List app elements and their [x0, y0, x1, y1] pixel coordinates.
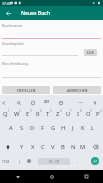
button[interactable]: Collapse toolbar — [0, 97, 9, 108]
button[interactable]: N — [68, 142, 78, 152]
button[interactable]: ABBRECHEN — [53, 86, 101, 94]
button[interactable]: Shift — [0, 142, 16, 152]
staticText: 5 — [50, 109, 52, 113]
button[interactable]: O — [83, 109, 93, 119]
staticText: H — [61, 124, 66, 132]
button[interactable]: R — [33, 109, 43, 119]
button[interactable]: S — [16, 123, 27, 133]
button[interactable]: Home — [35, 170, 69, 183]
staticText: 2 — [19, 109, 21, 113]
button[interactable]: A — [5, 123, 16, 133]
staticText: 7 — [70, 109, 72, 113]
staticText: 8 — [80, 109, 82, 113]
button[interactable]: Emoji — [24, 156, 33, 166]
button[interactable]: Enter — [91, 157, 99, 165]
button[interactable]: . — [73, 156, 82, 166]
staticText: Z — [56, 110, 60, 118]
button[interactable]: J — [68, 123, 78, 133]
staticText: D — [30, 124, 35, 132]
staticText: EUR — [87, 50, 94, 55]
staticText: ?123 — [2, 159, 10, 164]
staticText: M — [80, 143, 86, 151]
staticText: 9 — [90, 109, 92, 113]
button[interactable]: G — [48, 123, 58, 133]
staticText: B — [61, 143, 65, 151]
staticText: C — [41, 143, 45, 151]
button[interactable]: K — [78, 123, 88, 133]
staticText: N — [71, 143, 76, 151]
button[interactable]: X — [27, 142, 38, 152]
button[interactable]: I — [73, 109, 83, 119]
button[interactable]: EUR — [84, 49, 97, 56]
staticText: 3 — [30, 109, 32, 113]
staticText: S — [20, 124, 24, 132]
button[interactable]: L — [88, 123, 98, 133]
staticText: 0 — [100, 109, 102, 113]
staticText: T — [46, 110, 50, 118]
button[interactable]: Back — [0, 170, 35, 183]
staticText: . — [77, 158, 79, 165]
button[interactable]: Stickers — [55, 97, 66, 108]
button[interactable]: ERSTELLEN — [2, 86, 50, 94]
staticText: Neues Buch — [21, 10, 51, 17]
staticText: ABBRECHEN — [67, 88, 88, 93]
button[interactable]: Voice input — [89, 97, 100, 108]
staticText: X — [31, 143, 35, 151]
button[interactable]: C — [38, 142, 48, 152]
button[interactable]: W — [11, 109, 22, 119]
staticText: I — [77, 110, 79, 118]
button[interactable]: Z — [53, 109, 63, 119]
staticText: 6 — [60, 109, 62, 113]
staticText: F — [41, 124, 45, 132]
button[interactable]: Y — [16, 142, 27, 152]
staticText: 37:30 — [2, 1, 11, 6]
button[interactable]: U — [63, 109, 73, 119]
staticText: L — [91, 124, 95, 132]
button[interactable]: Backspace — [88, 142, 103, 152]
button[interactable]: T — [43, 109, 53, 119]
staticText: K — [81, 124, 85, 132]
staticText: A — [9, 124, 13, 132]
staticText: G — [51, 124, 56, 132]
staticText: Buchname — [2, 23, 23, 28]
staticText: J — [72, 124, 74, 132]
button[interactable] — [15, 156, 24, 166]
button[interactable]: Q — [0, 109, 11, 119]
staticText: Q — [3, 110, 8, 118]
staticText: E — [26, 110, 30, 118]
button[interactable]: ?123 — [0, 156, 12, 166]
button[interactable]: More options — [75, 97, 86, 108]
staticText: DE - DE — [49, 160, 60, 164]
staticText: 1 — [8, 109, 10, 113]
button[interactable]: V — [48, 142, 58, 152]
staticText: R — [36, 110, 40, 118]
button[interactable]: P — [93, 109, 103, 119]
staticText: P — [96, 110, 100, 118]
staticText: 4 — [40, 109, 42, 113]
button[interactable]: GIF — [42, 98, 51, 106]
button[interactable]: E — [22, 109, 33, 119]
staticText: Beschreibung — [2, 61, 28, 66]
button[interactable]: B — [58, 142, 68, 152]
button[interactable]: DE - DE — [38, 158, 70, 165]
button[interactable]: Navigate up — [1, 6, 15, 20]
button[interactable]: Clipboard — [27, 97, 38, 108]
staticText: W — [14, 110, 20, 118]
staticText: Y — [20, 143, 24, 151]
button[interactable]: H — [58, 123, 68, 133]
button[interactable]: F — [38, 123, 48, 133]
button[interactable]: Search — [13, 97, 24, 108]
staticText: U — [66, 110, 71, 118]
staticText: V — [51, 143, 55, 151]
button[interactable]: M — [78, 142, 88, 152]
button[interactable]: Recent apps — [69, 170, 103, 183]
staticText: ERSTELLEN — [17, 88, 36, 93]
staticText: Startkapital — [2, 41, 24, 46]
button[interactable]: D — [27, 123, 38, 133]
staticText: GIF — [44, 100, 50, 104]
staticText: O — [86, 110, 91, 118]
